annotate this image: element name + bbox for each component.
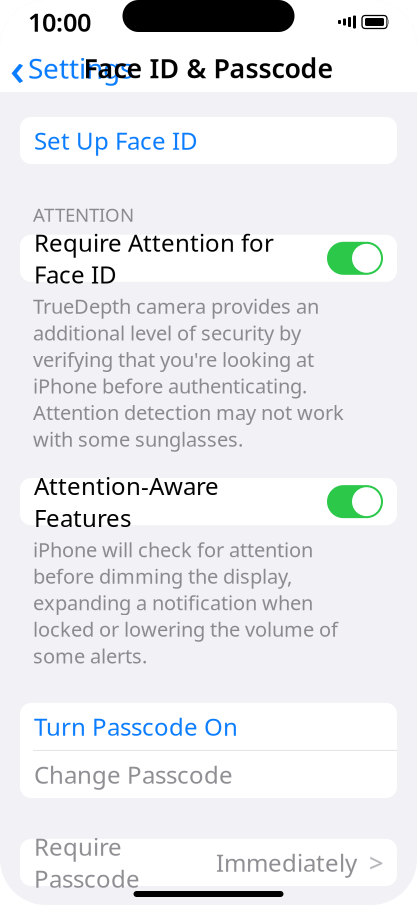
staticText: Turn Passcode On <box>34 710 238 742</box>
staticText: ATTENTION <box>33 202 134 227</box>
staticText: Change Passcode <box>34 758 233 790</box>
staticText: TrueDepth camera provides an additional … <box>33 293 344 452</box>
button[interactable]: Attention-Aware Features <box>20 478 397 525</box>
staticText: 10:00 <box>28 5 91 39</box>
staticText <box>356 7 362 37</box>
staticText: Set Up Face ID <box>34 125 198 156</box>
button[interactable]: Set Up Face ID <box>20 117 397 164</box>
button[interactable]: Require Attention for Face ID <box>20 235 397 282</box>
staticText: iPhone will check for attention before d… <box>33 536 338 669</box>
button[interactable]: ‹ <box>0 46 143 90</box>
button[interactable]: Change Passcode <box>20 751 397 798</box>
staticText: ‹ <box>10 38 25 98</box>
staticText: Immediately <box>216 846 357 878</box>
staticText: Require Passcode <box>34 831 140 894</box>
button[interactable]: Turn Passcode On <box>20 703 397 750</box>
staticText: > <box>369 846 383 879</box>
staticText: Attention-Aware Features <box>34 470 219 533</box>
staticText: Settings <box>28 49 133 87</box>
button[interactable]: Require Passcode <box>20 839 397 886</box>
staticText: Face ID & Passcode <box>83 50 333 86</box>
staticText: Require Attention for Face ID <box>34 226 274 290</box>
